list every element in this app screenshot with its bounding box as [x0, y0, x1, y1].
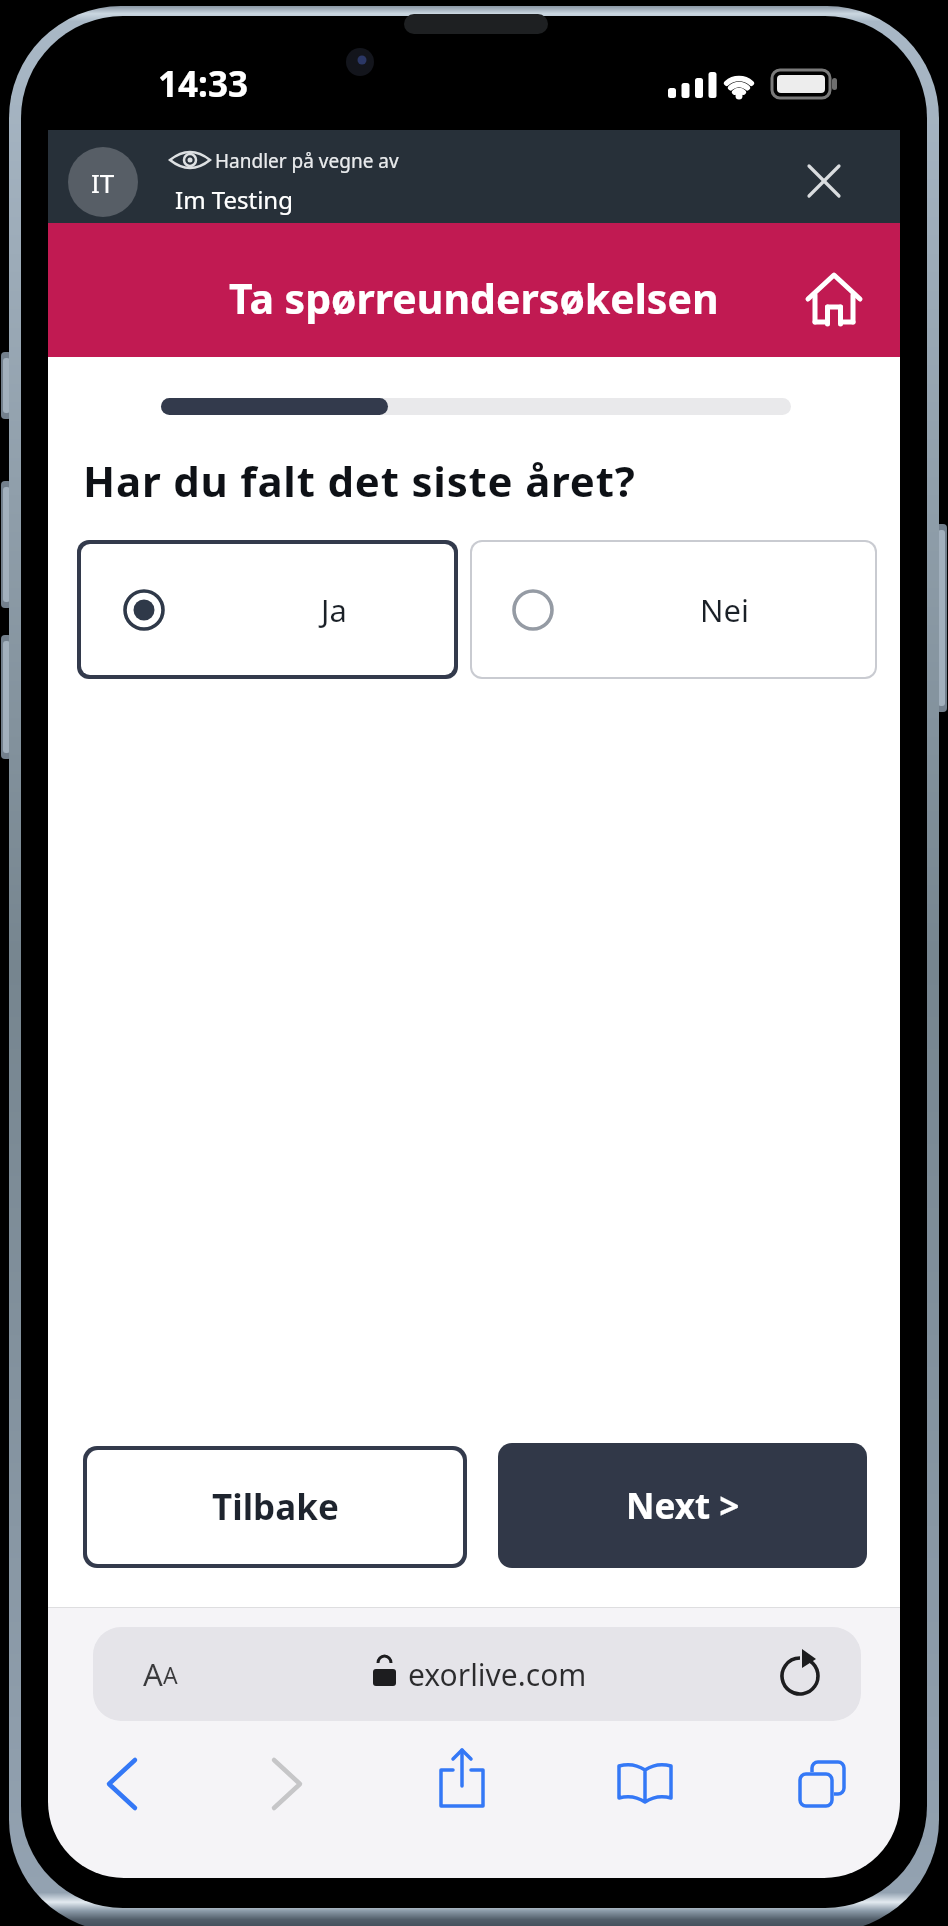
button[interactable]: Nei: [470, 540, 877, 679]
button[interactable]: [792, 1754, 852, 1814]
button[interactable]: Ja: [77, 540, 458, 679]
staticText: Handler på vegne av: [215, 148, 399, 174]
staticText: Tilbake: [212, 1483, 339, 1531]
button[interactable]: [93, 1627, 861, 1721]
button[interactable]: [794, 151, 854, 211]
button[interactable]: [432, 1750, 492, 1814]
staticText: Ta spørreundersøkelsen: [229, 270, 719, 326]
button[interactable]: Next >: [498, 1443, 867, 1568]
staticText: Har du falt det siste året?: [83, 452, 636, 502]
staticText: Nei: [700, 589, 750, 631]
staticText: Next >: [626, 1482, 740, 1530]
staticText: IT: [91, 165, 115, 200]
staticText: Im Testing: [175, 183, 293, 216]
button[interactable]: [257, 1754, 317, 1814]
button[interactable]: [92, 1754, 152, 1814]
staticText: A: [143, 1653, 163, 1695]
staticText: A: [163, 1659, 178, 1690]
button[interactable]: A: [120, 1627, 200, 1721]
button[interactable]: [615, 1754, 675, 1814]
staticText: 14:33: [158, 60, 248, 104]
button[interactable]: Tilbake: [83, 1446, 467, 1568]
staticText: exorlive.com: [408, 1654, 587, 1695]
button[interactable]: [802, 266, 862, 326]
staticText: Ja: [321, 589, 347, 631]
